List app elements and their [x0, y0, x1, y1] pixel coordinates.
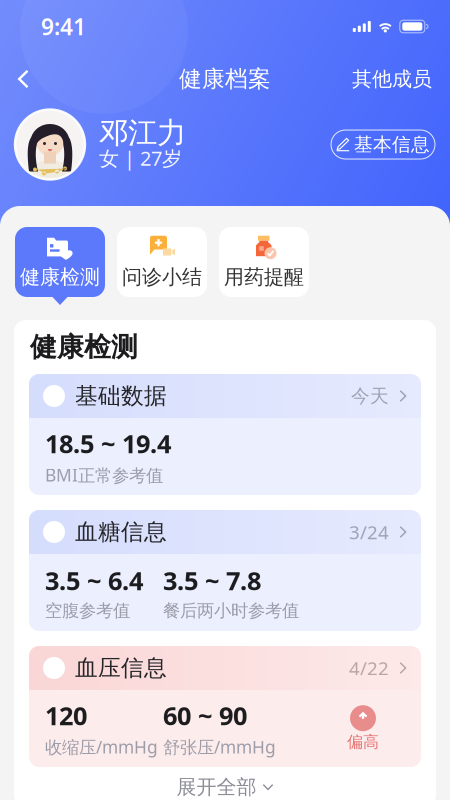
button[interactable]: 问诊小结	[117, 227, 207, 305]
staticText: 4/22	[349, 656, 389, 680]
button[interactable]: 用药提醒	[219, 227, 309, 305]
staticText: 健康检测	[20, 265, 100, 289]
staticText: 用药提醒	[224, 265, 304, 289]
staticText: 女 | 27岁	[99, 145, 182, 171]
button[interactable]: 基础数据	[29, 374, 421, 495]
staticText: 基本信息	[354, 133, 430, 156]
staticText: 60 ~ 90	[163, 699, 247, 732]
staticText: 收缩压/mmHg	[45, 735, 158, 758]
staticText: 3.5 ~ 6.4	[45, 563, 143, 597]
button[interactable]: 展开全部	[14, 767, 436, 800]
button[interactable]: 返回	[0, 61, 45, 97]
staticText: 今天	[351, 384, 389, 407]
staticText: 3.5 ~ 7.8	[163, 563, 261, 597]
staticText: 问诊小结	[122, 265, 202, 289]
staticText: 血压信息	[75, 654, 167, 682]
staticText: 基础数据	[75, 382, 167, 410]
staticText: 其他成员	[352, 67, 432, 91]
button[interactable]: 其他成员	[336, 58, 450, 100]
staticText: 9:41	[41, 11, 86, 41]
staticText: 120	[45, 699, 87, 732]
staticText: 健康检测	[30, 331, 138, 363]
staticText: 18.5 ~ 19.4	[45, 427, 171, 460]
staticText: 邓江力	[99, 115, 186, 151]
staticText: 舒张压/mmHg	[163, 735, 276, 758]
staticText: 偏高	[347, 732, 379, 752]
button[interactable]: 血糖信息	[29, 510, 421, 631]
staticText: 3/24	[349, 520, 389, 544]
staticText: 餐后两小时参考值	[163, 600, 299, 621]
staticText: 健康档案	[179, 65, 271, 93]
staticText: 空腹参考值	[45, 600, 130, 621]
button[interactable]: 健康检测	[15, 227, 105, 305]
button[interactable]: 基本信息	[331, 130, 435, 159]
staticText: 展开全部	[176, 775, 256, 799]
staticText: BMI正常参考值	[45, 463, 163, 486]
staticText: 血糖信息	[75, 518, 167, 546]
button[interactable]: 血压信息	[29, 646, 421, 767]
